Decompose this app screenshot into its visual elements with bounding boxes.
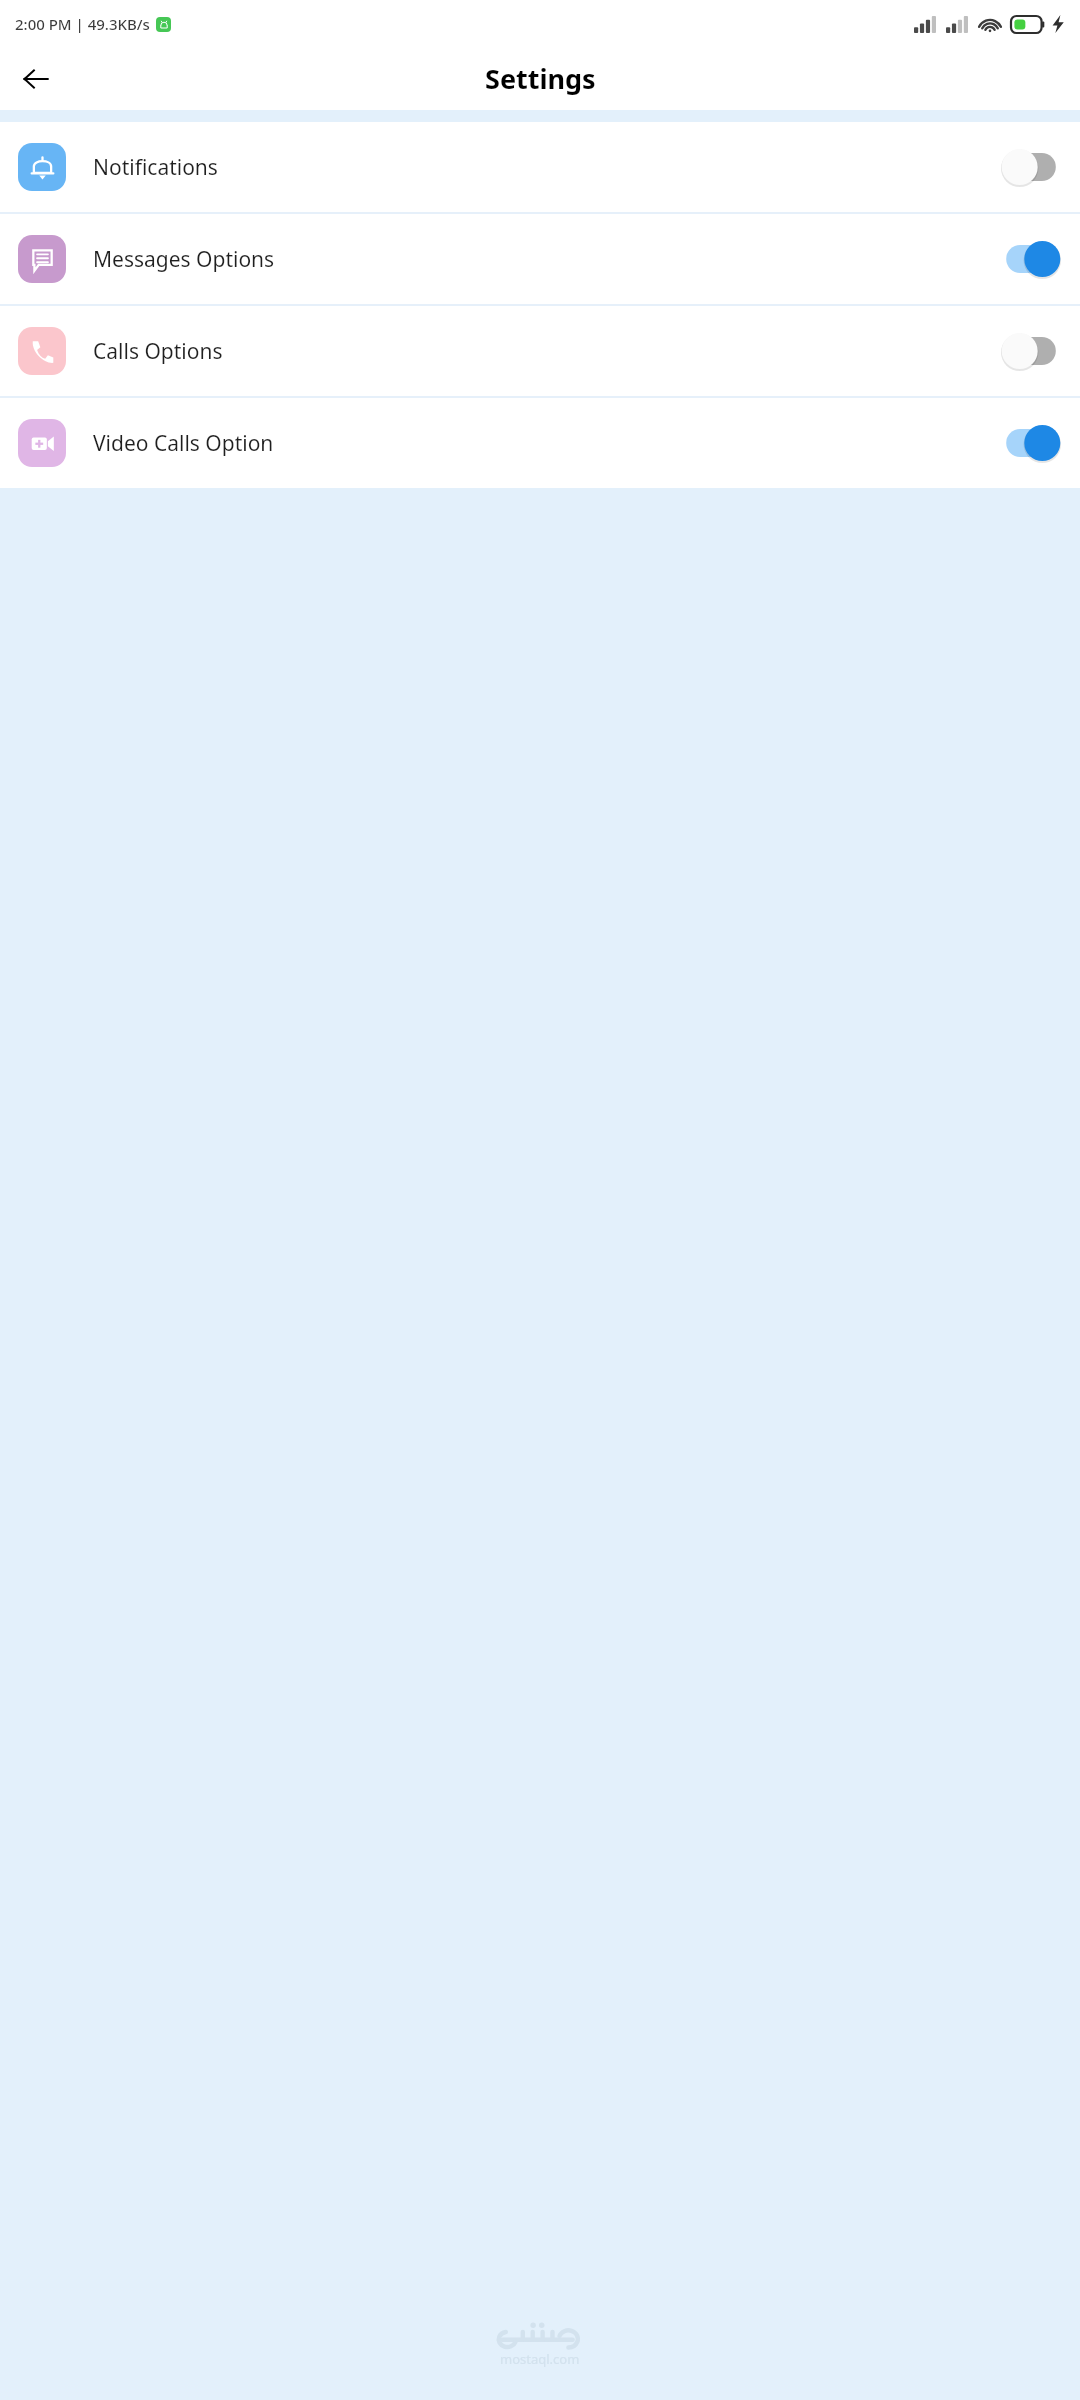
button[interactable]: Back [12,55,60,103]
staticText: Messages Options [93,245,275,274]
button[interactable]: Notifications [0,122,1080,212]
button[interactable]: Off [1000,147,1062,187]
staticText: Notifications [93,153,218,182]
staticText: 2:00 PM | 49.3KB/s [15,14,150,34]
button[interactable]: On [1000,239,1062,279]
button[interactable]: Video Calls Option [0,398,1080,488]
button[interactable]: Off [1000,331,1062,371]
staticText: mostaql.com [500,2350,580,2368]
button[interactable]: Messages Options [0,214,1080,304]
button[interactable]: On [1000,423,1062,463]
staticText: Video Calls Option [93,429,274,458]
button[interactable]: Calls Options [0,306,1080,396]
staticText: Calls Options [93,337,223,366]
staticText: Settings [485,60,596,97]
